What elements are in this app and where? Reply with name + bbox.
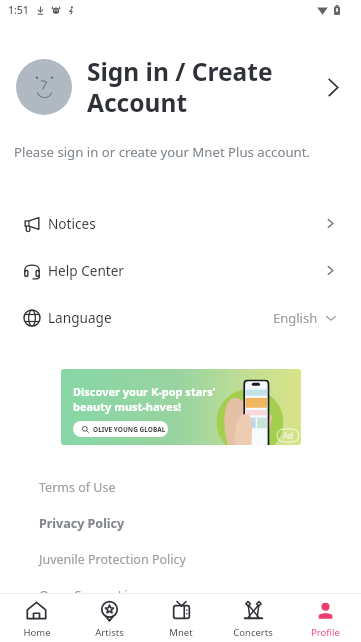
button[interactable]: Open Source License: [0, 577, 361, 613]
staticText: Please sign in or create your Mnet Plus …: [14, 143, 310, 161]
button[interactable]: OLIVE YOUNG GLOBAL: [73, 421, 168, 437]
staticText: Help Center: [48, 261, 124, 280]
staticText: Ad: [283, 430, 294, 441]
button[interactable]: Terms of Use: [0, 469, 361, 505]
button[interactable]: Mnet: [145, 593, 217, 642]
staticText: Juvenile Protection Policy: [39, 551, 186, 568]
staticText: Mnet: [169, 626, 193, 639]
staticText: beauty must-haves!: [73, 399, 182, 414]
button[interactable]: Notices: [0, 200, 361, 247]
staticText: Privacy Policy: [39, 515, 125, 532]
button[interactable]: Discover your K-pop stars': [61, 369, 301, 445]
staticText: Notices: [48, 214, 96, 233]
staticText: Artists: [95, 626, 124, 639]
button[interactable]: Sign in / Create Account: [0, 55, 361, 119]
staticText: Language: [48, 308, 112, 327]
staticText: Home: [23, 626, 51, 639]
button[interactable]: Juvenile Protection Policy: [0, 541, 361, 577]
staticText: Sign in / Create Account: [87, 55, 323, 119]
button[interactable]: Profile: [289, 593, 361, 642]
button[interactable]: Language: [0, 294, 361, 341]
staticText: Terms of Use: [39, 479, 116, 496]
staticText: Discover your K-pop stars': [73, 384, 216, 399]
staticText: Open Source License: [39, 587, 162, 604]
staticText: Concerts: [233, 626, 273, 639]
staticText: Profile: [311, 626, 340, 639]
button[interactable]: Concerts: [217, 593, 289, 642]
button[interactable]: Home: [0, 593, 73, 642]
button[interactable]: Help Center: [0, 247, 361, 294]
button[interactable]: Privacy Policy: [0, 505, 361, 541]
staticText: OLIVE YOUNG GLOBAL: [93, 425, 166, 434]
staticText: English: [273, 309, 318, 327]
staticText: 1:51: [8, 3, 29, 17]
button[interactable]: Artists: [73, 593, 145, 642]
